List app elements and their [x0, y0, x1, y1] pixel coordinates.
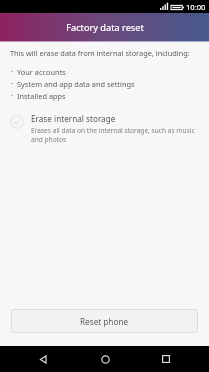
staticText: Reset phone — [80, 316, 129, 327]
staticText: This will erase data from internal stora… — [10, 48, 190, 58]
staticText: 10:00 — [186, 2, 206, 12]
staticText: · — [11, 90, 14, 101]
button[interactable]: Erase internal storage — [0, 111, 209, 146]
button[interactable]: Back — [30, 346, 56, 372]
button[interactable]: Recent apps — [153, 346, 179, 372]
button[interactable]: Home — [92, 346, 118, 372]
staticText: Factory data reset — [66, 21, 144, 34]
staticText: Installed apps — [17, 91, 66, 101]
staticText: Erases all data on the internal storage,… — [31, 126, 199, 144]
staticText: Your accounts — [17, 67, 66, 77]
staticText: · — [11, 78, 14, 89]
staticText: · — [11, 66, 14, 77]
button[interactable]: Reset phone — [11, 309, 198, 333]
staticText: System and app data and settings — [17, 79, 135, 89]
staticText: Erase internal storage — [31, 113, 116, 124]
